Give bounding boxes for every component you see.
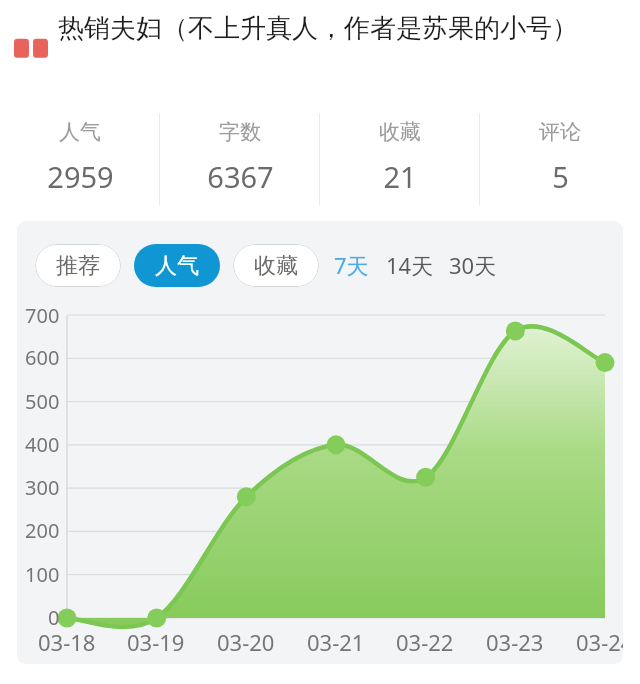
staticText: 100 <box>25 561 60 588</box>
staticText: 30天 <box>449 250 497 280</box>
button[interactable]: 收藏 <box>320 113 480 205</box>
button[interactable]: 7天 <box>332 242 371 288</box>
button[interactable]: 字数 <box>160 113 320 205</box>
staticText: 评论 <box>539 119 581 145</box>
staticText: 03-23 <box>486 627 544 657</box>
staticText: 03-21 <box>307 627 365 657</box>
staticText: 300 <box>25 474 60 501</box>
staticText: 03-22 <box>396 627 454 657</box>
staticText: 人气 <box>155 252 199 280</box>
staticText: 2959 <box>47 157 114 196</box>
staticText: 7天 <box>334 250 369 280</box>
staticText: 03-20 <box>217 627 275 657</box>
staticText: 03-24 <box>576 627 623 657</box>
button[interactable]: 30天 <box>447 242 499 288</box>
button[interactable]: 14天 <box>384 242 436 288</box>
button[interactable]: 收藏 <box>233 244 319 287</box>
staticText: 03-19 <box>127 627 185 657</box>
staticText: 5 <box>552 157 569 196</box>
staticText: 收藏 <box>379 119 421 145</box>
staticText: 字数 <box>219 119 261 145</box>
staticText: 200 <box>25 517 60 544</box>
button[interactable]: 人气 <box>134 244 220 287</box>
staticText: 400 <box>25 431 60 458</box>
button[interactable]: 评论 <box>480 113 640 205</box>
staticText: 03-18 <box>38 627 96 657</box>
staticText: 收藏 <box>254 252 298 280</box>
button[interactable]: 推荐 <box>35 244 121 287</box>
staticText: 600 <box>25 344 60 371</box>
staticText: 6367 <box>207 157 274 196</box>
staticText: 14天 <box>386 250 434 280</box>
staticText: 人气 <box>59 119 101 145</box>
other: Book <box>14 32 48 66</box>
staticText: 21 <box>383 157 417 196</box>
staticText: 热销夫妇（不上升真人，作者是苏果的小号） <box>58 12 578 45</box>
button[interactable]: 人气 <box>0 113 160 205</box>
staticText: 0 <box>48 604 60 631</box>
staticText: 500 <box>25 388 60 415</box>
staticText: 700 <box>25 302 60 329</box>
button[interactable]: Book <box>14 12 628 66</box>
staticText: 推荐 <box>56 252 100 280</box>
